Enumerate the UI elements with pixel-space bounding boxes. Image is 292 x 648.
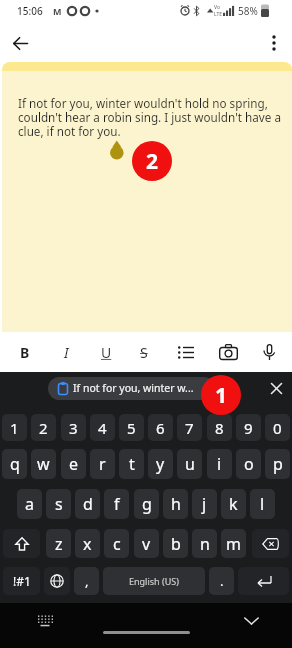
staticText: . (220, 572, 224, 590)
staticText: , (85, 572, 89, 590)
button[interactable]: If not for you, winter wouldn't hold no … (2, 62, 292, 332)
staticText: u (185, 453, 195, 475)
button[interactable]: s (46, 489, 71, 519)
button[interactable]: j (192, 489, 217, 519)
button[interactable]: g (134, 489, 159, 519)
button[interactable]: h (163, 489, 188, 519)
button[interactable]: !#1 (3, 567, 40, 595)
staticText: Vo LTE (214, 4, 223, 17)
staticText: If not for you, winter wouldn't hold no … (18, 95, 281, 140)
button[interactable] (3, 529, 40, 558)
button[interactable]: 5 (119, 414, 144, 441)
staticText: f (114, 493, 120, 515)
staticText: 5 (127, 418, 136, 438)
staticText: 1 (10, 418, 19, 438)
staticText: M (53, 5, 62, 17)
button[interactable]: w (31, 449, 56, 479)
button[interactable]: m (221, 529, 246, 558)
button[interactable] (252, 529, 289, 558)
staticText: n (200, 533, 210, 555)
staticText: English (US) (129, 575, 179, 587)
button[interactable]: o (236, 449, 261, 479)
button[interactable] (44, 567, 70, 595)
staticText: j (202, 493, 207, 515)
button[interactable]: l (250, 489, 275, 519)
staticText: o (244, 453, 254, 475)
button[interactable]: v (134, 529, 159, 558)
button[interactable] (236, 608, 266, 634)
staticText: 58% (238, 4, 258, 18)
button[interactable]: 1 (201, 375, 241, 415)
button[interactable] (6, 29, 34, 57)
staticText: l (260, 493, 265, 515)
button[interactable]: 4 (90, 414, 115, 441)
button[interactable] (170, 332, 202, 372)
button[interactable]: 1 (2, 414, 27, 441)
button[interactable]: u (177, 449, 202, 479)
button[interactable] (253, 332, 285, 372)
button[interactable] (238, 567, 289, 595)
staticText: 6 (156, 418, 165, 438)
button[interactable]: 7 (177, 414, 202, 441)
button[interactable]: f (104, 489, 129, 519)
button[interactable]: S (128, 332, 160, 372)
button[interactable]: 9 (236, 414, 261, 441)
staticText: 9 (244, 418, 253, 438)
staticText: 2 (146, 147, 159, 176)
staticText: a (25, 493, 34, 515)
button[interactable] (264, 376, 288, 400)
staticText: x (83, 533, 92, 555)
button[interactable]: U (90, 332, 122, 372)
button[interactable] (212, 332, 244, 372)
staticText: 7 (185, 418, 194, 438)
staticText: g (142, 493, 152, 515)
button[interactable]: p (265, 449, 290, 479)
staticText: d (83, 493, 93, 515)
button[interactable] (260, 29, 288, 57)
button[interactable]: 6 (148, 414, 173, 441)
staticText: 0 (273, 418, 282, 438)
staticText: i (217, 453, 222, 475)
button[interactable]: k (221, 489, 246, 519)
button[interactable]: If not for you, winter w... (48, 377, 215, 400)
button[interactable]: 0 (265, 414, 290, 441)
staticText: q (10, 453, 20, 475)
button[interactable]: , (74, 567, 99, 595)
button[interactable]: t (119, 449, 144, 479)
button[interactable]: a (17, 489, 42, 519)
button[interactable]: n (192, 529, 217, 558)
button[interactable]: B (9, 332, 41, 372)
staticText: S (140, 343, 148, 362)
staticText: p (273, 453, 283, 475)
button[interactable]: 2 (31, 414, 56, 441)
staticText: m (226, 533, 241, 555)
button[interactable]: . (209, 567, 234, 595)
button[interactable]: 3 (61, 414, 86, 441)
staticText: 1 (215, 381, 228, 410)
button[interactable]: I (50, 332, 82, 372)
button[interactable]: i (207, 449, 232, 479)
staticText: 2 (39, 418, 48, 438)
button[interactable]: x (75, 529, 100, 558)
staticText: y (156, 453, 165, 475)
button[interactable] (30, 608, 60, 634)
staticText: e (69, 453, 79, 475)
staticText: b (171, 533, 181, 555)
button[interactable]: r (90, 449, 115, 479)
button[interactable]: c (104, 529, 129, 558)
staticText: 3 (69, 418, 78, 438)
button[interactable]: y (148, 449, 173, 479)
staticText: k (229, 493, 238, 515)
button[interactable]: q (2, 449, 27, 479)
button[interactable]: 8 (207, 414, 232, 441)
staticText: U (101, 343, 112, 362)
button[interactable]: z (46, 529, 71, 558)
staticText: !#1 (13, 573, 31, 589)
button[interactable]: English (US) (103, 567, 205, 595)
button[interactable]: b (163, 529, 188, 558)
staticText: r (99, 453, 106, 475)
staticText: 15:06 (17, 4, 43, 18)
button[interactable]: d (75, 489, 100, 519)
button[interactable]: e (61, 449, 86, 479)
button[interactable]: 2 (132, 141, 172, 181)
